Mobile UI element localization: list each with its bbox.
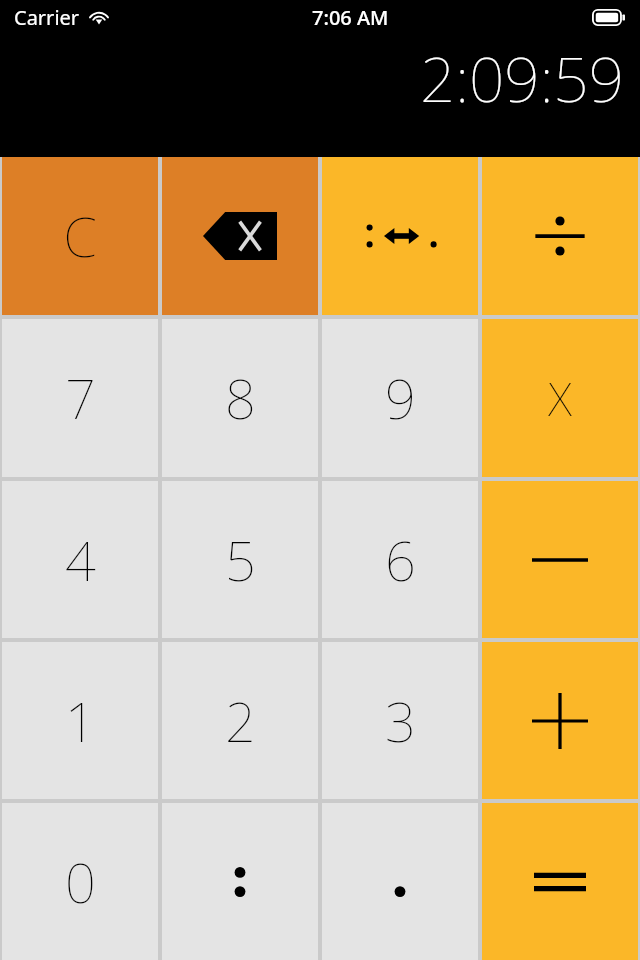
button[interactable]: 4 <box>2 481 158 638</box>
staticText: 4 <box>65 523 96 597</box>
button[interactable]: 6 <box>322 481 478 638</box>
button[interactable]: Backspace <box>162 157 318 315</box>
button[interactable]: Equals <box>482 803 638 960</box>
button[interactable]: Clear <box>2 157 158 315</box>
button[interactable]: 8 <box>162 319 318 477</box>
staticText: C <box>63 199 97 273</box>
button[interactable]: 3 <box>322 642 478 799</box>
button[interactable]: Minus <box>482 481 638 638</box>
staticText: 2:09:59 <box>420 36 624 120</box>
staticText: 9 <box>385 361 416 435</box>
button[interactable]: Decimal point <box>322 803 478 960</box>
button[interactable]: Plus <box>482 642 638 799</box>
staticText: 0 <box>65 845 96 919</box>
button[interactable]: Colon <box>162 803 318 960</box>
button[interactable]: 1 <box>2 642 158 799</box>
staticText: 6 <box>385 523 416 597</box>
staticText: 8 <box>225 361 256 435</box>
staticText: 3 <box>385 684 416 758</box>
staticText: 5 <box>225 523 256 597</box>
staticText: X <box>548 367 572 430</box>
button[interactable]: Divide <box>482 157 638 315</box>
button[interactable]: 7 <box>2 319 158 477</box>
staticText: 2 <box>225 684 256 758</box>
button[interactable]: 5 <box>162 481 318 638</box>
staticText: 7 <box>65 361 96 435</box>
button[interactable]: Multiply <box>482 319 638 477</box>
staticText: 7:06 AM <box>312 4 389 31</box>
button[interactable]: 0 <box>2 803 158 960</box>
button[interactable]: 9 <box>322 319 478 477</box>
staticText: 1 <box>65 684 96 758</box>
staticText: Carrier <box>14 4 80 31</box>
button[interactable]: 2 <box>162 642 318 799</box>
button[interactable]: Toggle colon decimal <box>322 157 478 315</box>
